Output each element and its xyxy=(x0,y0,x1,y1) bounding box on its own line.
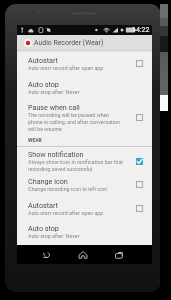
button[interactable]: Recent apps xyxy=(111,247,127,263)
staticText: WEAR xyxy=(28,137,42,143)
button[interactable]: Auto stop xyxy=(17,77,152,100)
staticText: phone is calling, and after conversation xyxy=(28,119,120,125)
staticText: recording saved successful xyxy=(28,166,93,172)
staticText: Change icon xyxy=(28,177,68,185)
staticText: Auto start record after open app xyxy=(28,65,104,71)
staticText: will be resume xyxy=(28,126,62,132)
staticText: Autostart xyxy=(28,201,58,209)
button[interactable]: Audio Recorder (Wear) xyxy=(17,35,152,50)
staticText: Auto stop xyxy=(28,224,59,232)
button[interactable]: Autostart xyxy=(17,198,152,221)
staticText: Show notification xyxy=(28,150,84,158)
staticText: The recording will be paused when xyxy=(28,112,110,118)
staticText: Audio Recorder (Wear) xyxy=(34,39,104,47)
staticText: Auto start record after open app xyxy=(28,210,104,216)
staticText: Autostart xyxy=(28,56,58,64)
button[interactable]: Back xyxy=(39,247,55,263)
staticText: Change recording icon to left icon xyxy=(28,186,108,192)
staticText: Always show icon in notification bar tha… xyxy=(28,159,123,165)
staticText: Auto stop after: Never xyxy=(28,233,80,239)
button[interactable]: Auto stop xyxy=(17,221,152,242)
staticText: Auto stop xyxy=(28,80,59,88)
button[interactable]: Change icon xyxy=(17,174,152,198)
staticText: 14:22 xyxy=(132,26,150,34)
button[interactable]: Autostart xyxy=(17,53,152,77)
button[interactable]: Pause when call xyxy=(17,100,152,134)
staticText: Auto stop after: Never xyxy=(28,89,80,95)
button[interactable]: Show notification xyxy=(17,147,152,174)
button[interactable]: Home xyxy=(75,247,91,263)
staticText: Pause when call xyxy=(28,103,80,111)
